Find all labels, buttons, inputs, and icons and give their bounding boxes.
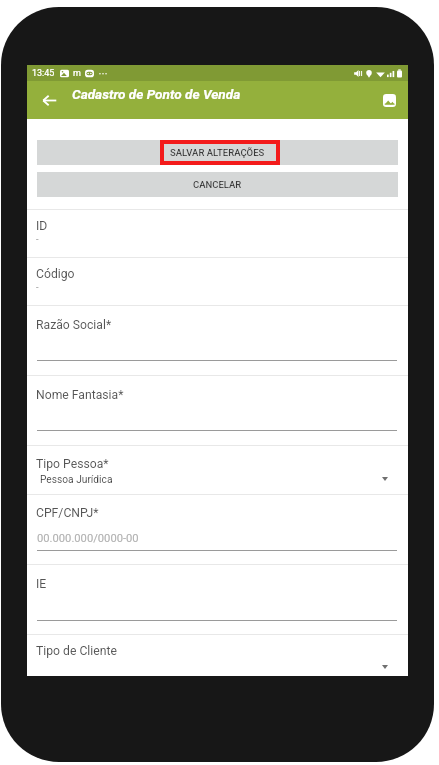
staticText: - — [36, 282, 39, 293]
button[interactable]: Tipo Pessoa* — [27, 446, 408, 494]
staticText: CANCELAR — [193, 179, 242, 190]
staticText: SALVAR ALTERAÇÕES — [170, 147, 265, 158]
staticText: ID — [36, 219, 48, 233]
staticText: Código — [36, 267, 75, 281]
button[interactable]: IE — [27, 565, 408, 634]
button[interactable]: CANCELAR — [37, 172, 398, 197]
staticText: CPF/CNPJ* — [36, 506, 99, 520]
staticText: Pessoa Jurídica — [40, 474, 113, 486]
staticText: Tipo de Cliente — [36, 644, 117, 658]
staticText: m — [73, 68, 81, 79]
staticText: IE — [36, 577, 47, 591]
button[interactable]: CPF/CNPJ* — [27, 495, 408, 564]
button[interactable]: Nome Fantasia* — [27, 376, 408, 445]
button[interactable]: Back — [27, 81, 71, 119]
staticText: Razão Social* — [36, 318, 112, 332]
staticText: Tipo Pessoa* — [36, 457, 109, 471]
staticText: - — [36, 234, 39, 245]
staticText: Nome Fantasia* — [36, 388, 124, 402]
button[interactable]: Razão Social* — [27, 306, 408, 375]
button[interactable]: Photo — [370, 81, 408, 119]
staticText: 00.000.000/0000-00 — [37, 532, 139, 545]
button[interactable]: Tipo de Cliente — [27, 635, 408, 676]
button[interactable]: SALVAR ALTERAÇÕES — [37, 140, 398, 165]
staticText: Cadastro de Ponto de Venda — [72, 86, 241, 102]
staticText: 13:45 — [32, 68, 55, 79]
